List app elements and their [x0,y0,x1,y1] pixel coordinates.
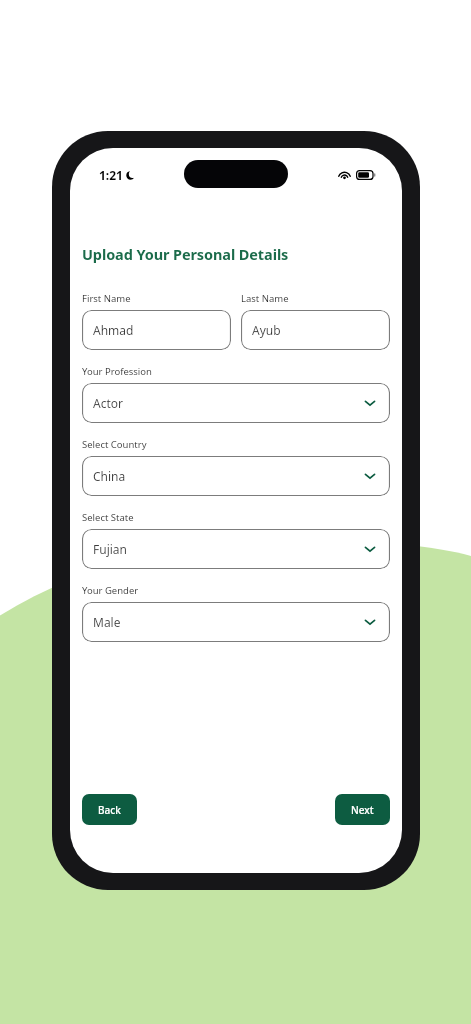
staticText: Select State [82,511,134,524]
button[interactable]: Next [335,794,390,825]
staticText: Ahmad [93,322,134,338]
button[interactable]: Ayub [241,310,390,350]
staticText: Next [351,803,374,817]
button[interactable]: Ahmad [82,310,231,350]
staticText: Your Profession [82,365,152,378]
button[interactable]: Back [82,794,137,825]
button[interactable]: China [82,456,390,496]
button[interactable]: Actor [82,383,390,423]
staticText: Actor [93,395,123,411]
staticText: Last Name [241,292,289,305]
staticText: Select Country [82,438,147,451]
staticText: China [93,468,126,484]
staticText: Your Gender [82,584,139,597]
staticText: Fujian [93,541,127,557]
staticText: Upload Your Personal Details [82,244,289,264]
staticText: 1:21 [99,167,123,183]
staticText: Ayub [252,322,281,338]
staticText: First Name [82,292,131,305]
button[interactable]: Fujian [82,529,390,569]
staticText: Male [93,614,121,630]
staticText: Back [98,803,121,817]
button[interactable]: Male [82,602,390,642]
